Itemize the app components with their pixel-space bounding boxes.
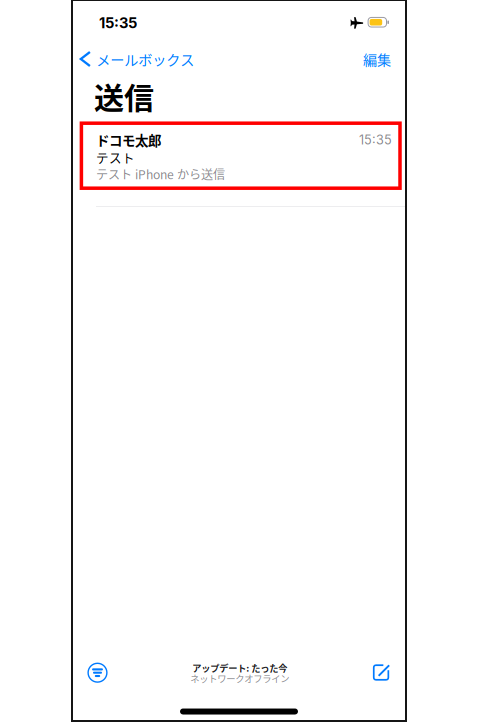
staticText: 送信 (94, 74, 154, 118)
staticText: 編集 (363, 49, 391, 69)
button[interactable]: 新規メッセージ (363, 655, 399, 690)
button[interactable]: ドコモ太郎 (72, 117, 406, 206)
staticText: テスト (96, 148, 135, 166)
staticText: テスト iPhone から送信 (96, 165, 225, 183)
button[interactable]: 編集 (355, 43, 399, 75)
button[interactable]: フィルタ (79, 654, 116, 691)
button[interactable]: メールボックス (72, 43, 200, 75)
staticText: ネットワークオフライン (190, 671, 289, 685)
staticText: ドコモ太郎 (96, 130, 161, 150)
staticText: 15:35 (99, 14, 137, 32)
staticText: メールボックス (96, 49, 194, 69)
staticText: アップデート: たった今 (192, 661, 287, 674)
staticText: 15:35 (359, 132, 392, 148)
